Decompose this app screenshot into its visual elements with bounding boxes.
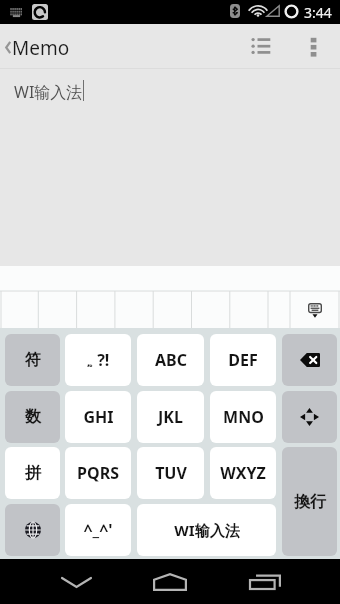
staticText: WI输入法 <box>174 520 240 540</box>
button[interactable]: MNO <box>210 391 276 443</box>
staticText: WXYZ <box>220 462 266 484</box>
button[interactable]: PQRS <box>65 447 131 499</box>
button[interactable]: More options <box>294 32 334 62</box>
button[interactable]: 数 <box>5 391 60 443</box>
button[interactable]: 符 <box>5 334 60 386</box>
staticText: WI输入法 <box>14 81 83 103</box>
staticText: Memo <box>12 35 70 61</box>
button[interactable]: Home <box>140 563 200 601</box>
staticText: ABC <box>155 349 187 371</box>
staticText: 換行 <box>294 492 326 512</box>
button[interactable]: backspace <box>282 334 337 386</box>
button[interactable]: Hide keyboard <box>46 563 106 601</box>
staticText: ^_^' <box>83 519 113 541</box>
button[interactable]: WI输入法 <box>137 504 276 556</box>
button[interactable]: Recent apps <box>235 563 295 601</box>
button[interactable]: WXYZ <box>210 447 276 499</box>
button[interactable]: punctuation <box>65 334 131 386</box>
button[interactable]: Memo <box>0 24 64 69</box>
button[interactable]: arrow keys <box>282 391 337 443</box>
button[interactable]: ABC <box>137 334 204 386</box>
staticText: 3:44 <box>304 3 332 22</box>
staticText: JKL <box>158 406 183 428</box>
button[interactable]: Hide keyboard <box>290 291 339 328</box>
button[interactable]: DEF <box>210 334 276 386</box>
button[interactable]: 換行 <box>282 447 337 556</box>
staticText: 符 <box>25 350 41 370</box>
staticText: TUV <box>155 462 187 484</box>
staticText: PQRS <box>77 462 119 484</box>
button[interactable]: JKL <box>137 391 204 443</box>
staticText: ,。?! <box>87 349 110 371</box>
staticText: MNO <box>223 406 264 428</box>
staticText: 拼 <box>25 463 41 483</box>
button[interactable]: List view <box>236 32 280 62</box>
staticText: GHI <box>83 406 114 428</box>
staticText: 数 <box>25 407 41 427</box>
button[interactable]: 拼 <box>5 447 60 499</box>
button[interactable]: TUV <box>137 447 204 499</box>
button[interactable]: GHI <box>65 391 131 443</box>
button[interactable]: ^_^' <box>65 504 131 556</box>
staticText: DEF <box>228 349 258 371</box>
button[interactable]: change input method <box>5 504 60 556</box>
